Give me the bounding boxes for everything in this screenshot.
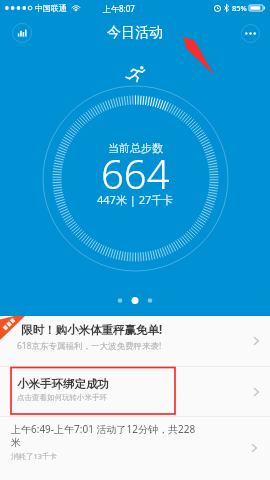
- staticText: 中国联通: [35, 3, 67, 13]
- button[interactable]: 上午6:49-上午7:01 活动了12分钟，共228 米: [0, 417, 270, 480]
- button[interactable]: More options: [236, 19, 264, 47]
- button[interactable]: 限时！购小米体重秤赢免单!: [0, 316, 270, 366]
- staticText: 上午8:07: [103, 3, 135, 14]
- staticText: 447米 | 27千卡: [97, 192, 174, 207]
- staticText: 当前总步数: [108, 141, 163, 155]
- staticText: 618京东专属福利，一大波免费秤来袭!: [17, 340, 162, 352]
- staticText: 消耗了13千卡: [11, 451, 58, 461]
- button[interactable]: 小米手环绑定成功: [0, 367, 270, 416]
- staticText: 小米手环绑定成功: [17, 377, 109, 391]
- staticText: 点击查看如何玩转小米手环: [17, 393, 107, 402]
- staticText: 85%: [232, 3, 247, 13]
- staticText: 664: [101, 146, 170, 200]
- staticText: 今日活动: [107, 24, 163, 42]
- staticText: 限时！购小米体重秤赢免单!: [21, 322, 163, 338]
- staticText: 上午6:49-上午7:01 活动了12分钟，共228 米: [11, 422, 196, 449]
- button[interactable]: Statistics: [8, 19, 36, 47]
